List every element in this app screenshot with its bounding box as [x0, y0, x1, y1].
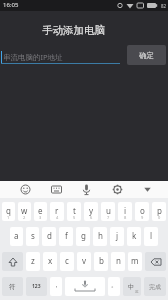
staticText: z [31, 255, 35, 266]
button[interactable] [65, 277, 105, 296]
button[interactable]: u [101, 202, 115, 221]
staticText: p [157, 205, 162, 216]
staticText: y [89, 205, 94, 216]
button[interactable] [2, 252, 23, 271]
staticText: o [140, 205, 145, 216]
button[interactable]: x [43, 252, 57, 271]
button[interactable]: j [110, 227, 124, 246]
staticText: k [132, 230, 137, 241]
button[interactable]: y [84, 202, 98, 221]
staticText: m [131, 255, 139, 266]
staticText: r [55, 205, 59, 216]
button[interactable]: d [42, 227, 56, 246]
staticText: 符 [9, 283, 16, 291]
staticText: 2 [23, 215, 26, 220]
staticText: 3 [39, 215, 42, 220]
button[interactable]: c [60, 252, 74, 271]
button[interactable]: h [93, 227, 107, 246]
button[interactable]: i [118, 202, 132, 221]
button[interactable]: m [128, 252, 142, 271]
button[interactable]: k [127, 227, 141, 246]
staticText: c [65, 255, 69, 266]
staticText: l [150, 230, 153, 241]
button[interactable]: ， [50, 277, 62, 296]
button[interactable] [145, 252, 166, 271]
staticText: e [38, 205, 43, 216]
staticText: t [73, 205, 76, 216]
staticText: ， [53, 281, 60, 289]
staticText: 确定 [139, 51, 154, 60]
staticText: g [81, 230, 86, 241]
button[interactable] [79, 182, 94, 197]
staticText: x [48, 255, 53, 266]
staticText: 7 [107, 215, 110, 220]
button[interactable] [18, 182, 33, 197]
button[interactable]: 完成 [144, 277, 166, 296]
button[interactable]: 串流电脑的IP地址 [0, 45, 122, 70]
button[interactable]: s [26, 227, 39, 246]
staticText: 5 [73, 215, 76, 220]
staticText: q [6, 205, 11, 216]
staticText: s [31, 230, 35, 241]
button[interactable]: v [77, 252, 91, 271]
button[interactable]: w [18, 202, 31, 221]
button[interactable]: l [144, 227, 158, 246]
staticText: 9 [141, 215, 144, 220]
button[interactable] [49, 182, 64, 197]
staticText: 完成 [149, 283, 161, 291]
staticText: 4 [56, 215, 59, 220]
staticText: v [82, 255, 87, 266]
staticText: j [116, 230, 119, 241]
staticText: 8 [124, 215, 127, 220]
staticText: d [47, 230, 52, 241]
button[interactable]: f [59, 227, 73, 246]
staticText: a [14, 230, 19, 241]
button[interactable]: z [26, 252, 40, 271]
button[interactable]: o [135, 202, 149, 221]
staticText: n [116, 255, 121, 266]
button[interactable]: 中 [123, 277, 141, 296]
button[interactable]: a [10, 227, 23, 246]
staticText: 手动添加电脑 [42, 24, 105, 37]
button[interactable] [110, 182, 125, 197]
button[interactable]: e [34, 202, 47, 221]
staticText: 123 [32, 283, 41, 290]
staticText: i [124, 205, 127, 216]
button[interactable]: 符 [2, 277, 23, 296]
button[interactable]: n [111, 252, 125, 271]
button[interactable]: g [76, 227, 90, 246]
button[interactable] [140, 182, 155, 197]
button[interactable]: 123 [26, 277, 47, 296]
staticText: 6 [90, 215, 93, 220]
button[interactable]: 。 [108, 277, 120, 296]
staticText: h [98, 230, 103, 241]
staticText: f [65, 230, 68, 241]
staticText: 。 [111, 281, 118, 289]
staticText: 0 [158, 215, 161, 220]
staticText: w [21, 205, 28, 216]
button[interactable]: 确定 [127, 45, 166, 65]
button[interactable]: p [152, 202, 166, 221]
staticText: 1 [7, 215, 10, 220]
staticText: 英 [135, 290, 139, 294]
staticText: b [99, 255, 104, 266]
button[interactable]: b [94, 252, 108, 271]
button[interactable]: t [67, 202, 81, 221]
staticText: 中 [128, 283, 135, 291]
staticText: 82 [161, 3, 167, 9]
staticText: u [106, 205, 111, 216]
staticText: 16:05 [3, 1, 19, 9]
staticText: 串流电脑的IP地址 [3, 52, 63, 62]
button[interactable]: r [50, 202, 64, 221]
button[interactable]: q [2, 202, 15, 221]
